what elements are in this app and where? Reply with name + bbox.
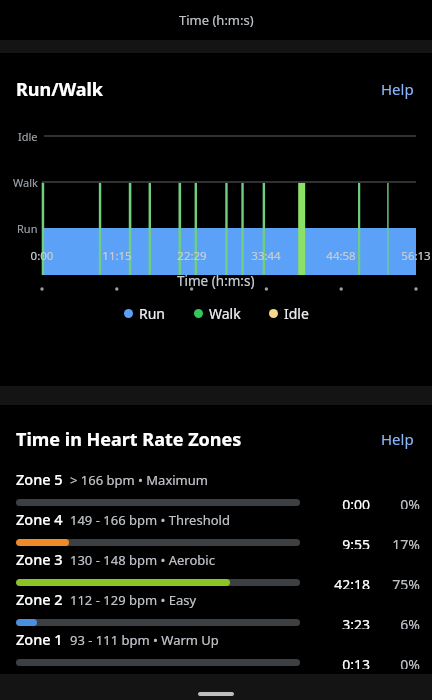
button[interactable]: Zone 5 [0, 469, 432, 509]
button[interactable]: Walk [194, 302, 241, 325]
staticText: 3:23 [324, 615, 370, 629]
staticText: 0:00 [26, 248, 58, 264]
staticText: 149 - 166 bpm • Threshold [70, 511, 230, 529]
staticText: Time (h:m:s) [179, 11, 254, 29]
button[interactable]: Help [379, 425, 416, 453]
staticText: 6% [386, 615, 420, 629]
button[interactable]: Zone 4 [0, 509, 432, 549]
staticText: Zone 5 [16, 469, 63, 489]
staticText: 22:29 [176, 248, 208, 264]
staticText: Run [17, 221, 38, 236]
staticText: Time in Heart Rate Zones [16, 427, 242, 452]
button[interactable]: Zone 2 [0, 589, 432, 629]
staticText: 112 - 129 bpm • Easy [70, 591, 197, 609]
staticText: Run/Walk [16, 77, 104, 102]
staticText: Idle [18, 129, 38, 144]
staticText: Run [139, 304, 166, 323]
button[interactable]: Zone 3 [0, 549, 432, 589]
staticText: > 166 bpm • Maximum [70, 471, 208, 489]
staticText: Zone 3 [16, 549, 63, 569]
staticText: Zone 1 [16, 629, 63, 649]
staticText: 44:58 [325, 248, 357, 264]
button[interactable]: Idle [269, 302, 309, 325]
staticText: Idle [284, 304, 309, 323]
staticText: Help [381, 79, 414, 99]
staticText: 93 - 111 bpm • Warm Up [70, 631, 219, 649]
staticText: 0:00 [324, 495, 370, 509]
staticText: Time (h:m:s) [177, 272, 255, 290]
button[interactable]: Help [379, 75, 416, 103]
staticText: 0% [386, 495, 420, 509]
staticText: 0% [386, 655, 420, 669]
staticText: Zone 4 [16, 509, 63, 529]
staticText: 56:13 [400, 248, 432, 264]
staticText: 75% [386, 575, 420, 589]
button[interactable]: Run [124, 302, 166, 325]
staticText: Zone 2 [16, 589, 63, 609]
staticText: Walk [209, 304, 241, 323]
staticText: 11:15 [101, 248, 133, 264]
staticText: 42:18 [324, 575, 370, 589]
button[interactable]: Zone 1 [0, 629, 432, 669]
staticText: 130 - 148 bpm • Aerobic [70, 551, 215, 569]
staticText: 17% [386, 535, 420, 549]
staticText: 9:55 [324, 535, 370, 549]
staticText: 33:44 [250, 248, 282, 264]
staticText: 0:13 [324, 655, 370, 669]
staticText: Walk [13, 175, 38, 190]
staticText: Help [381, 429, 414, 449]
